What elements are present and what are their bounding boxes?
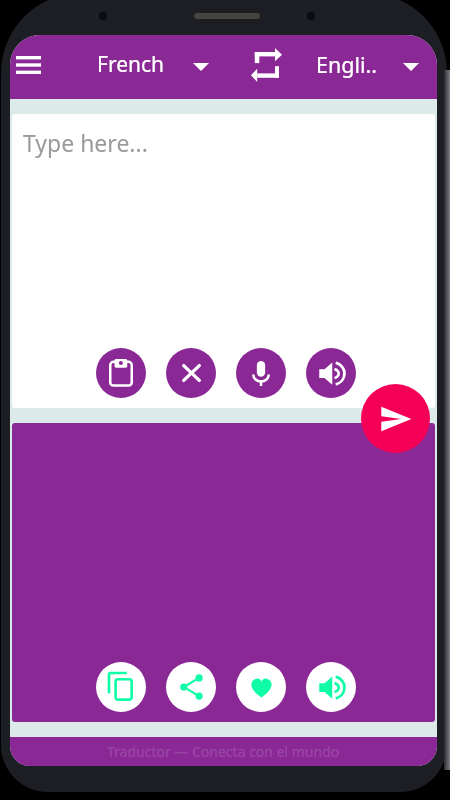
- button[interactable]: Engli..: [316, 50, 419, 79]
- button[interactable]: Translate: [361, 384, 430, 453]
- button[interactable]: Share: [166, 662, 216, 712]
- button[interactable]: Copy: [96, 662, 146, 712]
- staticText: French: [97, 50, 165, 79]
- button[interactable]: Menu: [10, 45, 48, 85]
- button[interactable]: Favorite: [236, 662, 286, 712]
- staticText: Type here...: [23, 127, 148, 158]
- staticText: Engli..: [316, 50, 378, 79]
- button[interactable]: Clear: [166, 348, 216, 398]
- button[interactable]: Speak: [236, 348, 286, 398]
- button[interactable]: Listen: [306, 662, 356, 712]
- button[interactable]: Listen: [306, 348, 356, 398]
- button[interactable]: French: [97, 50, 209, 79]
- staticText: Traductor — Conecta con el mundo: [107, 742, 340, 761]
- button[interactable]: Swap languages: [244, 43, 288, 87]
- button[interactable]: Paste: [96, 348, 146, 398]
